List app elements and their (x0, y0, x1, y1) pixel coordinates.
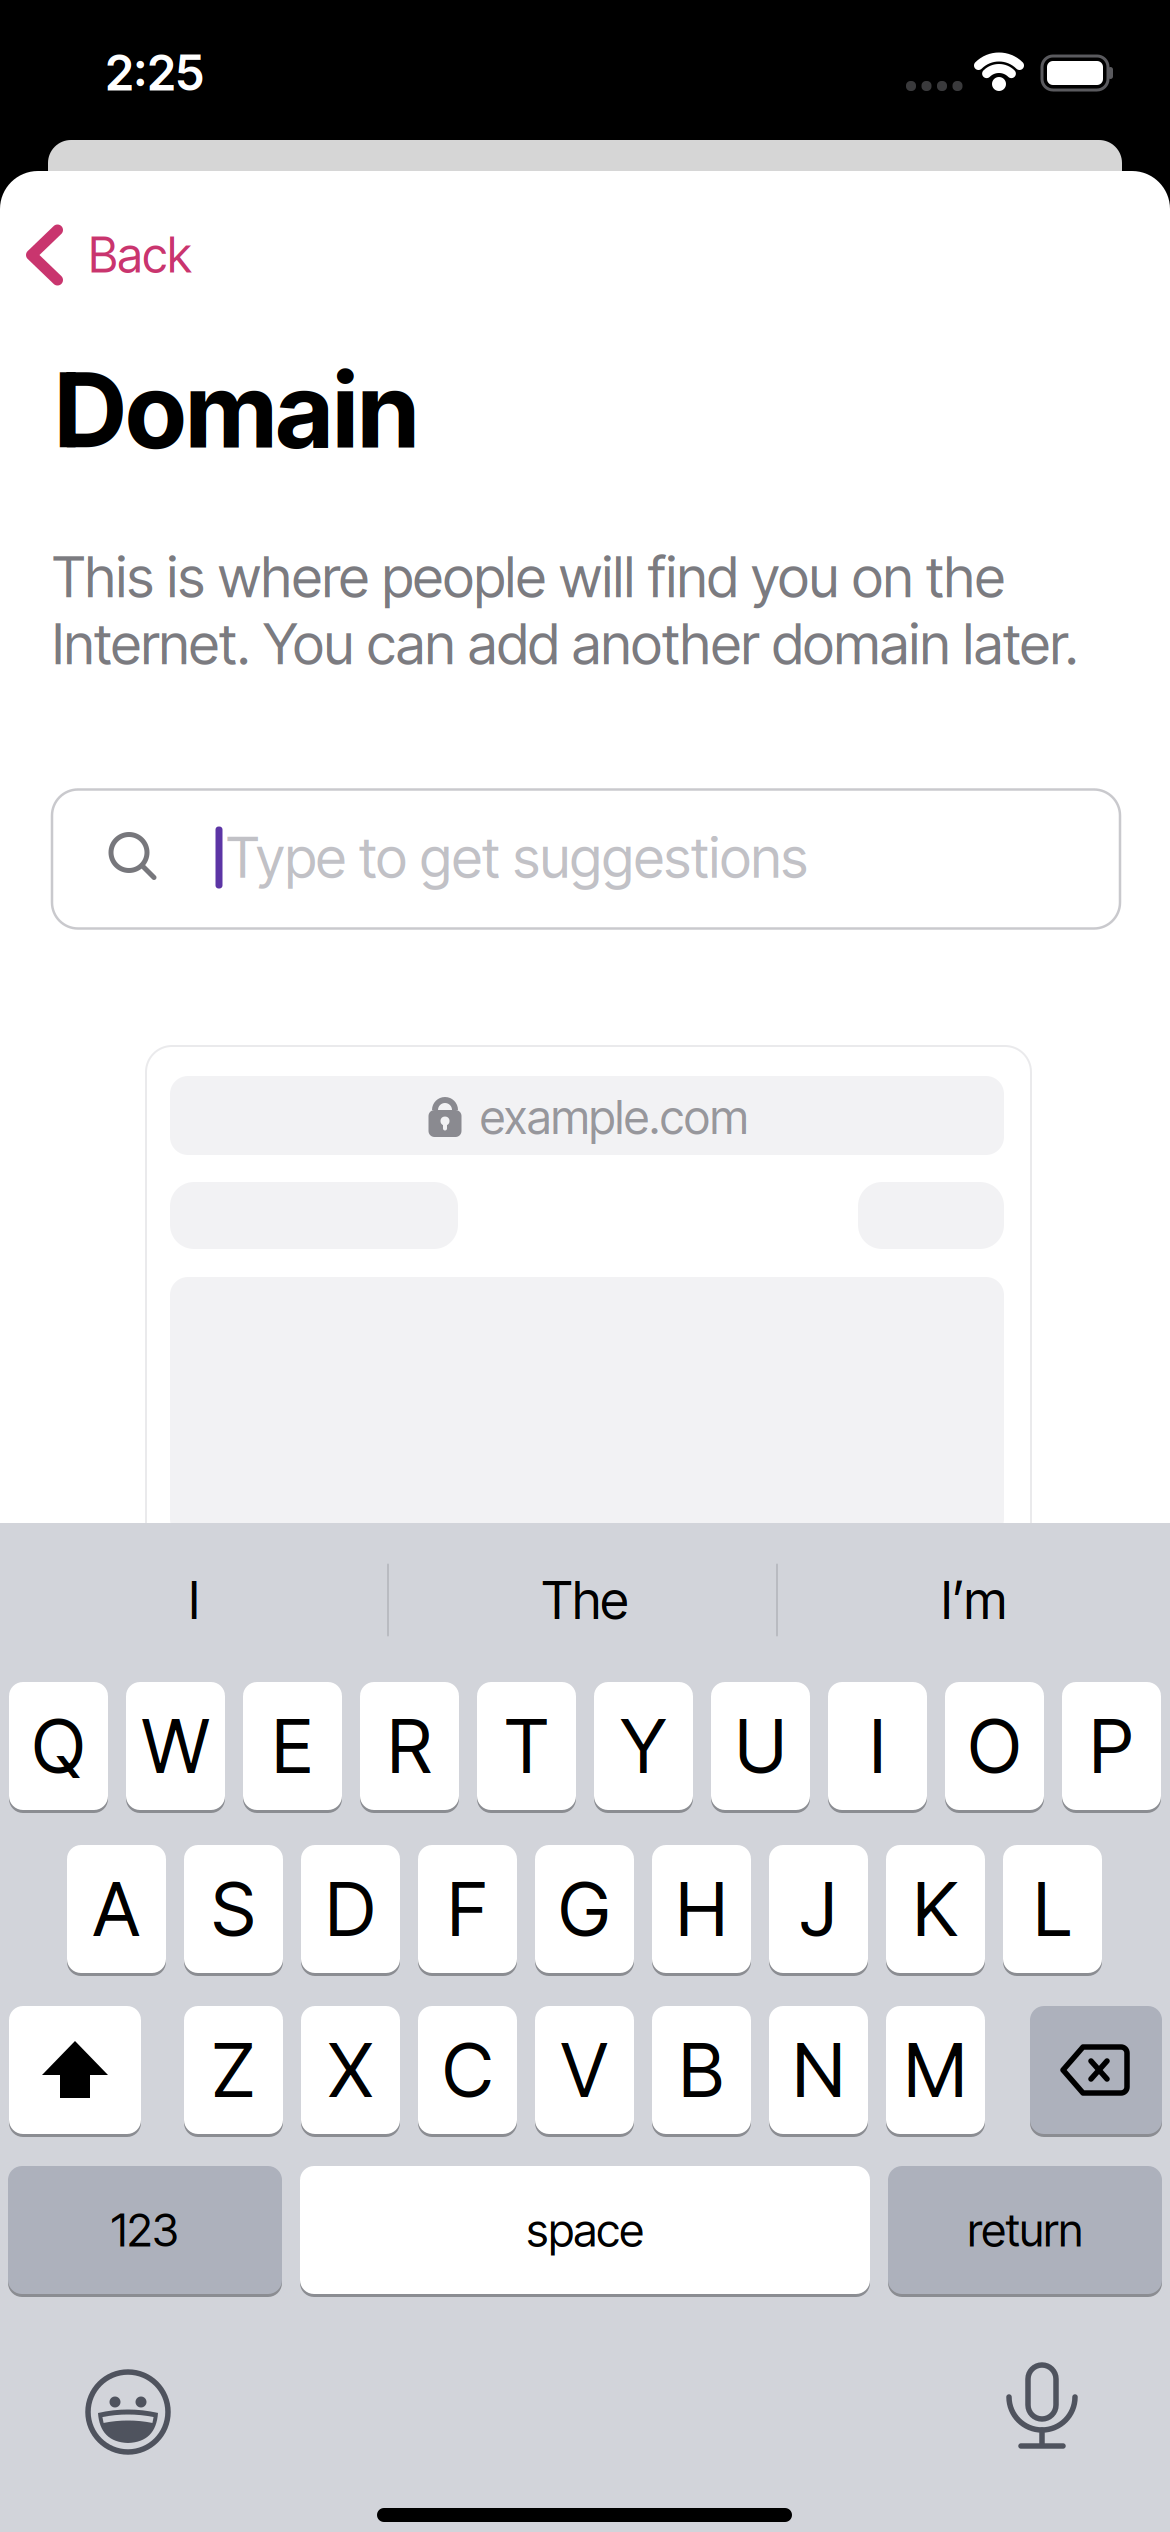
button[interactable]: I (828, 1682, 927, 1810)
staticText: S (211, 1864, 255, 1954)
staticText: X (328, 2025, 372, 2115)
staticText: M (904, 2025, 967, 2115)
staticText: Type to get suggestions (226, 824, 808, 891)
button[interactable]: N (769, 2006, 868, 2134)
staticText: K (913, 1864, 958, 1954)
staticText: example.com (480, 1089, 748, 1145)
button[interactable]: M (886, 2006, 985, 2134)
button[interactable]: Q (9, 1682, 108, 1810)
staticText: T (504, 1701, 548, 1791)
button[interactable]: Back (26, 225, 191, 285)
staticText: Y (620, 1701, 666, 1791)
button[interactable]: Delete (1030, 2006, 1162, 2134)
staticText: R (387, 1701, 431, 1791)
button[interactable]: J (769, 1845, 868, 1973)
button[interactable]: I’m (794, 1535, 1154, 1665)
button[interactable]: P (1062, 1682, 1161, 1810)
staticText: D (325, 1864, 375, 1954)
button[interactable]: return (888, 2166, 1162, 2294)
staticText: 123 (111, 2203, 179, 2257)
button[interactable]: A (67, 1845, 166, 1973)
button[interactable]: T (477, 1682, 576, 1810)
button[interactable]: I (14, 1535, 374, 1665)
staticText: O (968, 1701, 1021, 1791)
staticText: H (676, 1864, 727, 1954)
button[interactable]: R (360, 1682, 459, 1810)
button[interactable]: B (652, 2006, 751, 2134)
staticText: This is where people will find you on th… (52, 543, 1005, 611)
button[interactable]: D (301, 1845, 400, 1973)
button[interactable]: Emoji (85, 2369, 171, 2455)
staticText: I (188, 1568, 199, 1631)
button[interactable]: V (535, 2006, 634, 2134)
button[interactable]: H (652, 1845, 751, 1973)
staticText: The (541, 1568, 628, 1631)
button[interactable]: S (184, 1845, 283, 1973)
staticText: return (967, 2203, 1082, 2257)
staticText: I’m (941, 1568, 1007, 1631)
staticText: E (272, 1701, 313, 1791)
staticText: Internet. You can add another domain lat… (52, 610, 1078, 678)
staticText: V (561, 2025, 608, 2115)
staticText: Z (212, 2025, 255, 2115)
staticText: 2:25 (105, 44, 204, 102)
button[interactable]: U (711, 1682, 810, 1810)
button[interactable]: Y (594, 1682, 693, 1810)
staticText: N (792, 2025, 844, 2115)
button[interactable]: Dictation (1007, 2363, 1077, 2453)
staticText: Back (88, 226, 191, 284)
button[interactable]: G (535, 1845, 634, 1973)
button[interactable]: W (126, 1682, 225, 1810)
button[interactable]: E (243, 1682, 342, 1810)
button[interactable]: F (418, 1845, 517, 1973)
button[interactable]: O (945, 1682, 1044, 1810)
button[interactable]: K (886, 1845, 985, 1973)
staticText: J (800, 1864, 837, 1954)
staticText: A (93, 1864, 140, 1954)
button[interactable]: 123 (8, 2166, 282, 2294)
button[interactable]: The (405, 1535, 765, 1665)
staticText: P (1089, 1701, 1133, 1791)
button[interactable]: Z (184, 2006, 283, 2134)
button[interactable]: C (418, 2006, 517, 2134)
button[interactable]: L (1003, 1845, 1102, 1973)
staticText: W (142, 1701, 209, 1791)
staticText: G (558, 1864, 610, 1954)
button[interactable]: space (300, 2166, 870, 2294)
staticText: B (679, 2025, 724, 2115)
button[interactable]: Type to get suggestions (52, 789, 1120, 928)
staticText: I (869, 1701, 885, 1791)
staticText: U (735, 1701, 786, 1791)
button[interactable]: Shift (9, 2006, 141, 2134)
staticText: space (526, 2203, 643, 2257)
staticText: C (442, 2025, 492, 2115)
staticText: Domain (55, 348, 419, 472)
staticText: F (447, 1864, 487, 1954)
button[interactable]: X (301, 2006, 400, 2134)
staticText: Q (32, 1701, 85, 1791)
staticText: L (1033, 1864, 1071, 1954)
